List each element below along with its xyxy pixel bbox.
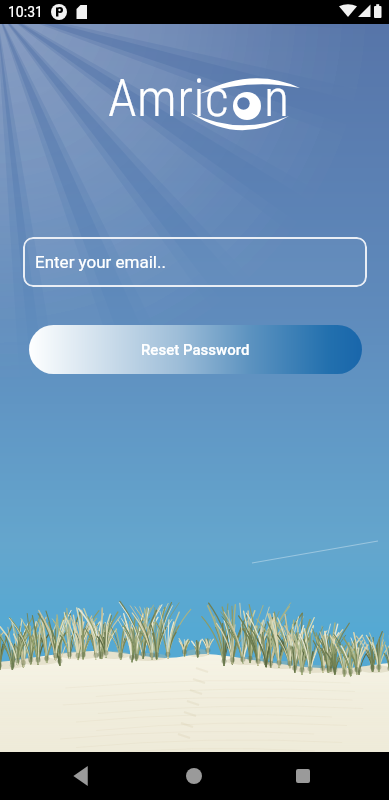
staticText: Amric <box>108 68 229 129</box>
button[interactable]: Enter your email.. <box>23 237 367 287</box>
button[interactable] <box>279 752 327 800</box>
button[interactable] <box>58 752 106 800</box>
staticText: Reset Password <box>141 341 250 359</box>
button[interactable]: Reset Password <box>29 325 362 374</box>
staticText: 10:31 <box>8 4 43 20</box>
staticText: Enter your email.. <box>35 252 166 272</box>
button[interactable] <box>170 752 218 800</box>
staticText: n <box>264 68 290 129</box>
